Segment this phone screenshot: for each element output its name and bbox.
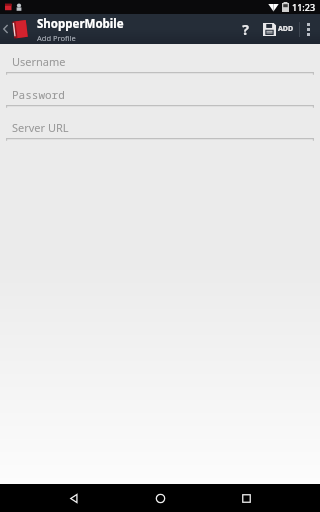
button[interactable]: ADD (258, 14, 299, 44)
staticText: ADD (278, 24, 294, 34)
button[interactable]: More options (300, 14, 317, 44)
staticText: Password (12, 87, 65, 102)
button[interactable]: Back (31, 484, 117, 512)
button[interactable]: Help (232, 14, 258, 44)
button[interactable]: Home (117, 484, 203, 512)
staticText: Server URL (12, 120, 69, 135)
button[interactable]: Recent apps (203, 484, 289, 512)
button[interactable]: Password (0, 84, 320, 108)
staticText: Username (12, 54, 66, 69)
button[interactable]: Navigate up (0, 17, 32, 41)
staticText: ? (242, 20, 249, 39)
button[interactable]: Server URL (0, 117, 320, 141)
staticText: 11:23 (292, 1, 316, 13)
staticText: ShopperMobile (37, 16, 124, 32)
staticText: Add Profile (37, 33, 76, 43)
button[interactable]: Username (0, 51, 320, 75)
